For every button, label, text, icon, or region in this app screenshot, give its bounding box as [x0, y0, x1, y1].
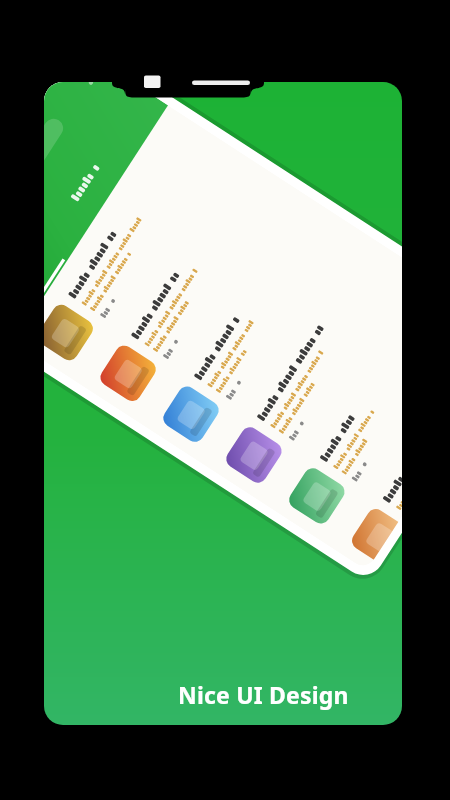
button[interactable]: Nice UI Design phone mockup — [0, 0, 450, 800]
staticText: Nice UI Design — [178, 679, 349, 710]
